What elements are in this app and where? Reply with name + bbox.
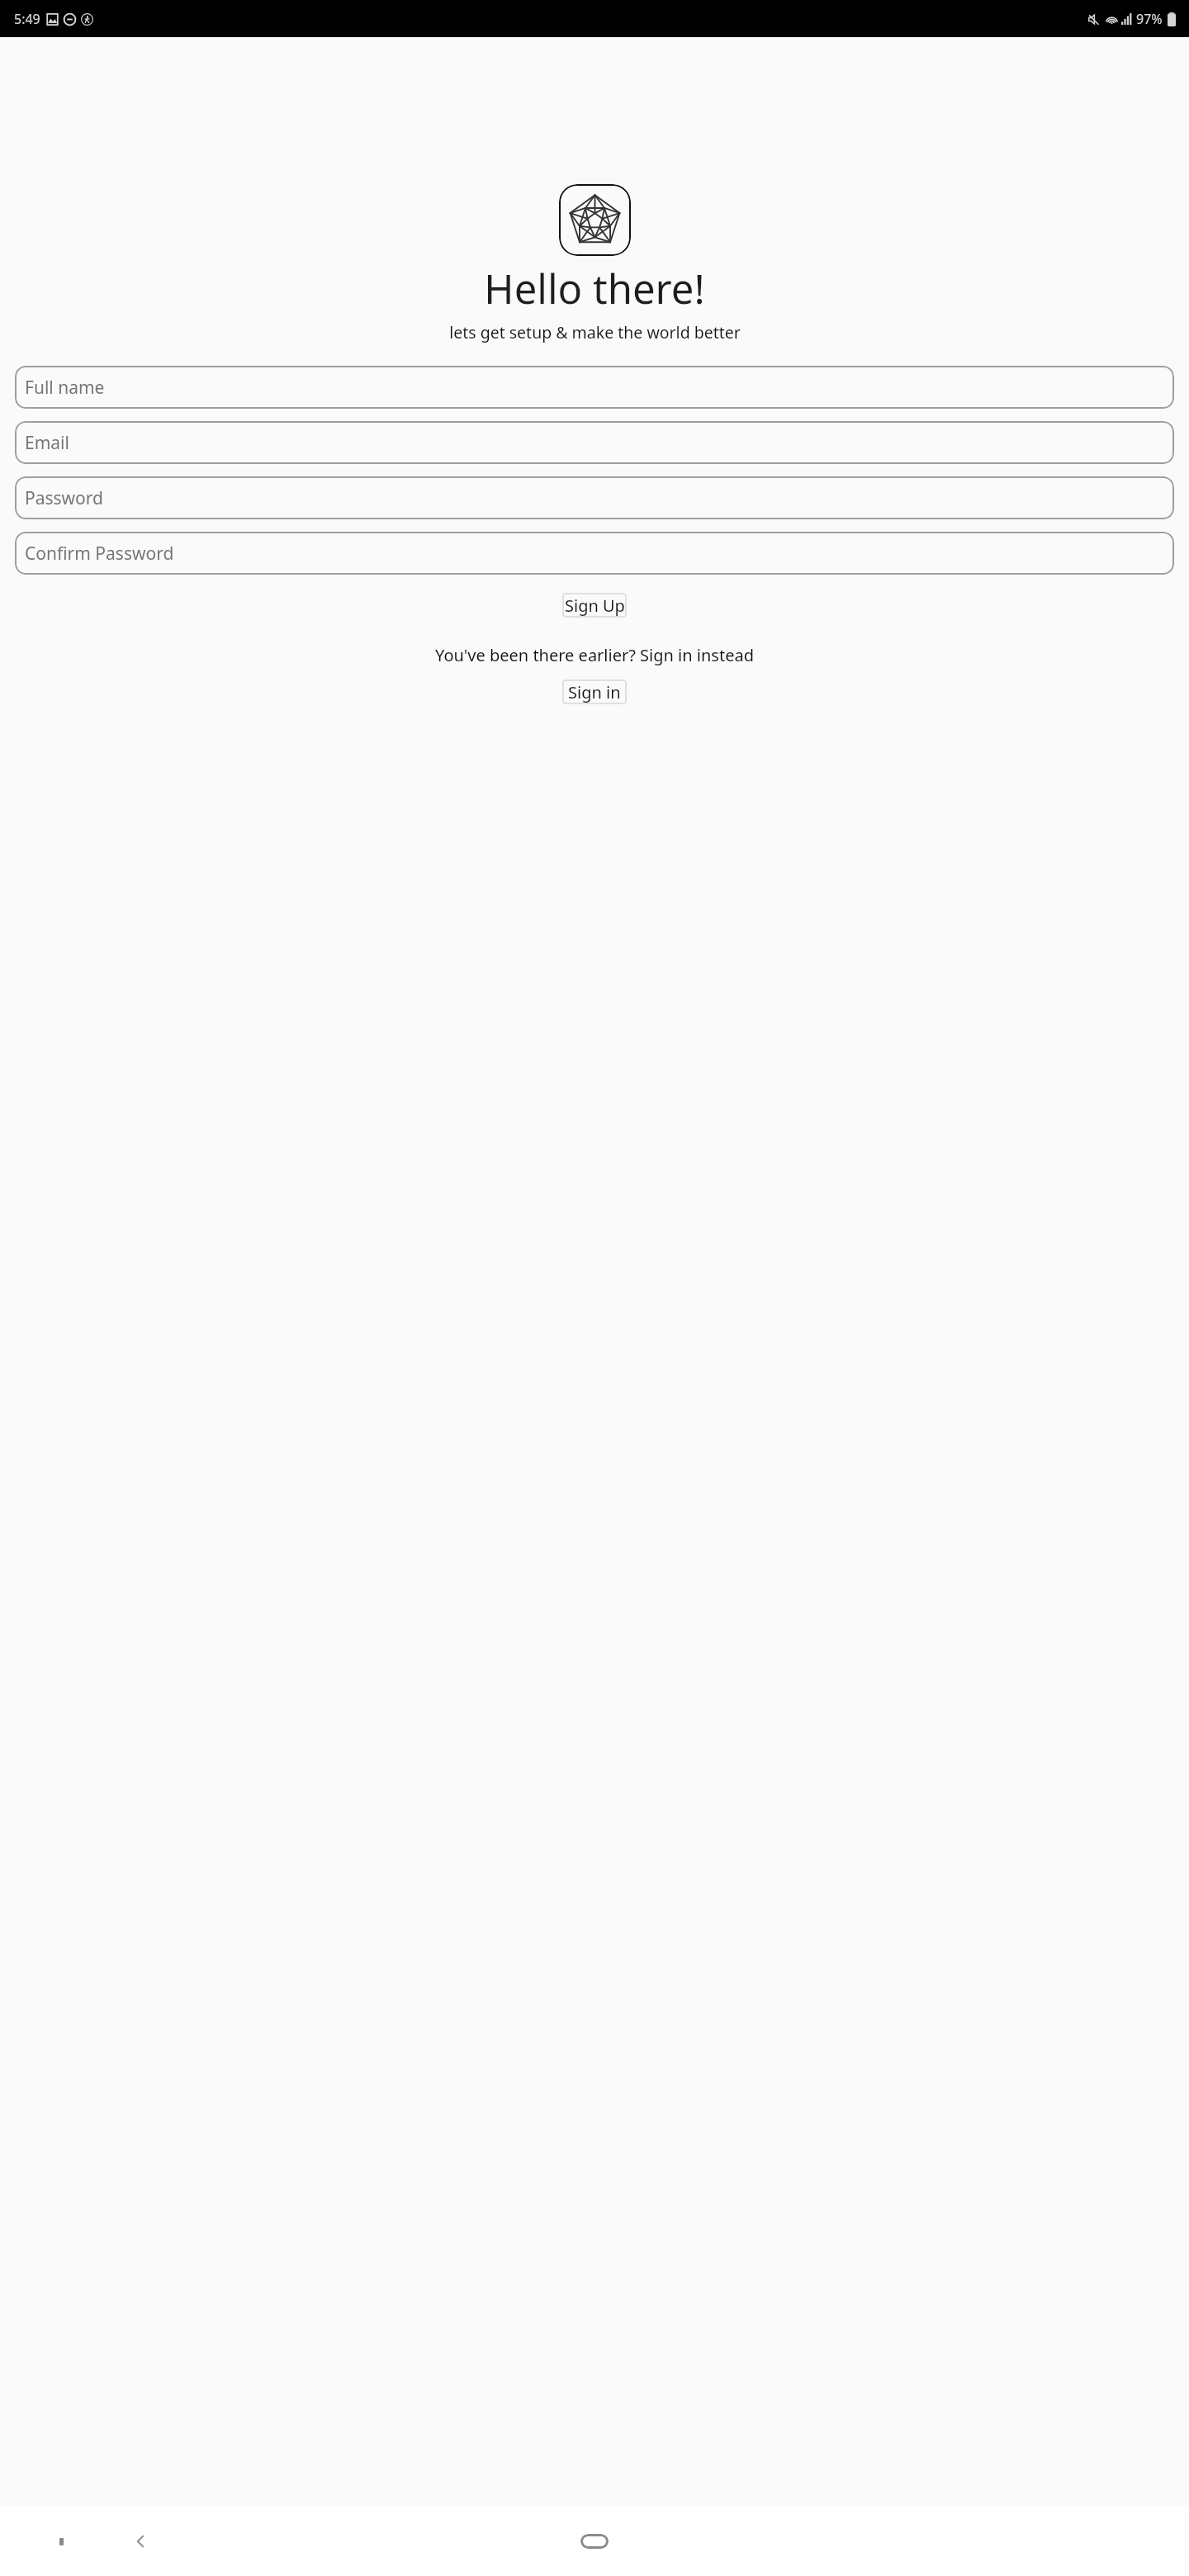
button[interactable]: Recent apps: [43, 2523, 79, 2559]
staticText: Confirm Password: [25, 542, 174, 566]
button[interactable]: Sign Up: [562, 593, 627, 618]
staticText: lets get setup & make the world better: [449, 321, 741, 343]
button[interactable]: Sign in: [562, 680, 627, 704]
staticText: Password: [25, 486, 103, 510]
staticText: You've been there earlier? Sign in inste…: [435, 644, 754, 666]
button[interactable]: App logo: [559, 184, 631, 256]
button[interactable]: Home: [569, 2523, 620, 2559]
button[interactable]: Full name: [15, 366, 1174, 409]
staticText: 97%: [1136, 10, 1163, 28]
staticText: Sign Up: [565, 594, 625, 617]
button[interactable]: Back: [122, 2523, 159, 2559]
staticText: Full name: [25, 376, 105, 400]
button[interactable]: Confirm Password: [15, 532, 1174, 575]
staticText: Hello there!: [484, 261, 705, 316]
button[interactable]: Password: [15, 476, 1174, 519]
staticText: Email: [25, 431, 69, 455]
staticText: 5:49: [14, 10, 40, 28]
button[interactable]: Email: [15, 421, 1174, 464]
staticText: Sign in: [568, 681, 621, 703]
